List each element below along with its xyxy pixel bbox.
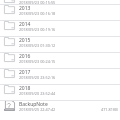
button[interactable]: 2012	[0, 0, 120, 9]
button[interactable]: 2014	[0, 20, 120, 36]
staticText: 2018/09/23 00:19:16	[19, 27, 56, 32]
button[interactable]: 2017	[0, 68, 120, 84]
staticText: 471.81KB	[101, 107, 118, 112]
staticText: 2016	[19, 53, 31, 60]
staticText: 2018/09/23 00:24:15	[19, 59, 56, 64]
button[interactable]: BackupNote	[0, 100, 120, 116]
staticText: 2018/09/20 23:52:16	[19, 75, 56, 80]
staticText: 2013	[19, 5, 31, 12]
button[interactable]: 2013	[0, 4, 120, 20]
staticText: 2018	[19, 85, 31, 92]
staticText: 2017	[19, 69, 31, 76]
staticText: 2018/09/23 00:16:18	[19, 11, 56, 16]
staticText: 2014	[19, 21, 31, 28]
staticText: BackupNote	[19, 101, 48, 108]
staticText: 2018/09/23 01:30:12	[19, 43, 56, 48]
staticText: 2018/09/25 22:47:42	[19, 107, 56, 112]
staticText: 2018/09/23 00:15:55	[19, 0, 56, 5]
button[interactable]: 2018	[0, 84, 120, 100]
staticText: 2015	[19, 37, 31, 44]
staticText: 2018/09/20 23:52:44	[19, 91, 56, 96]
button[interactable]: 2016	[0, 52, 120, 68]
button[interactable]: 2015	[0, 36, 120, 52]
